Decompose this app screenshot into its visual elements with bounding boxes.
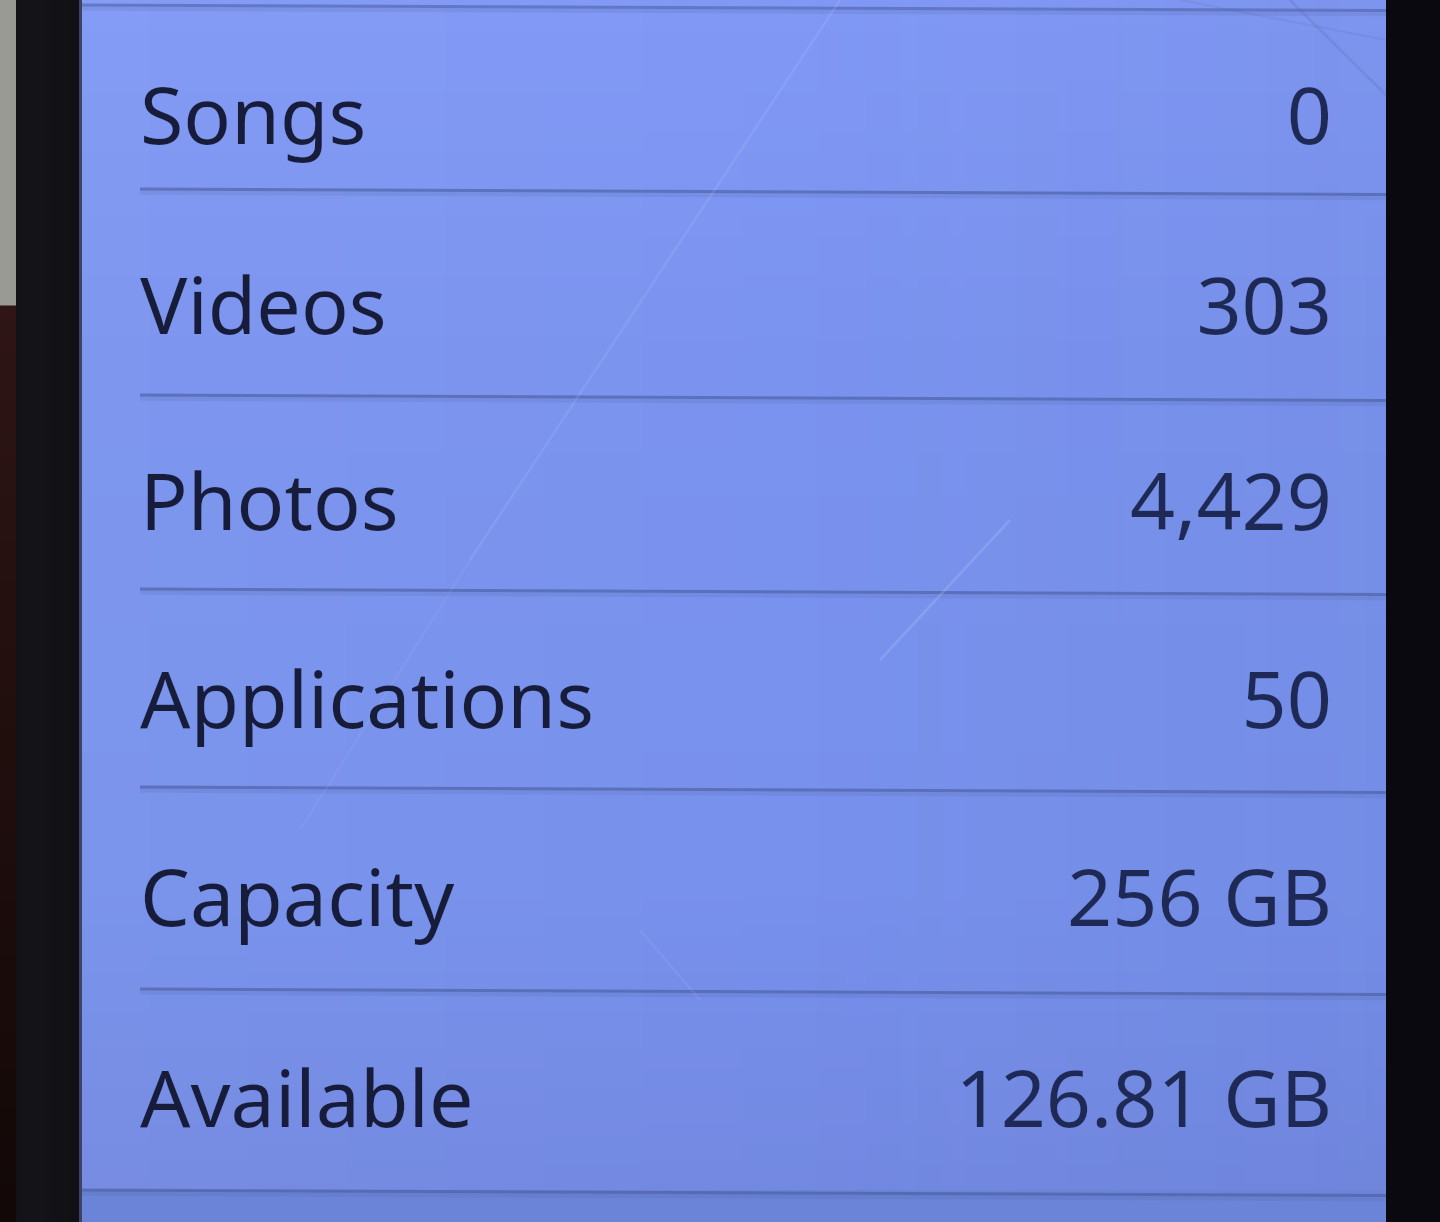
button[interactable]: Photos 4,429: [82, 395, 1386, 589]
staticText: 303: [82, 250, 1332, 346]
button[interactable]: Videos 303: [82, 189, 1386, 395]
staticText: Videos: [140, 250, 387, 358]
staticText: 4,429: [82, 446, 1332, 542]
staticText: Songs: [140, 60, 367, 168]
staticText: 50: [82, 644, 1332, 740]
staticText: Available: [140, 1043, 474, 1151]
button[interactable]: Songs 0: [82, 5, 1386, 189]
staticText: 0: [82, 60, 1332, 156]
button[interactable]: Available 126.81 GB: [82, 989, 1386, 1190]
staticText: Capacity: [140, 842, 455, 950]
staticText: 126.81 GB: [82, 1043, 1332, 1139]
staticText: 256 GB: [82, 842, 1332, 938]
button[interactable]: Applications 50: [82, 589, 1386, 787]
staticText: Applications: [140, 644, 595, 752]
button[interactable]: Capacity 256 GB: [82, 787, 1386, 989]
staticText: Photos: [140, 446, 399, 554]
